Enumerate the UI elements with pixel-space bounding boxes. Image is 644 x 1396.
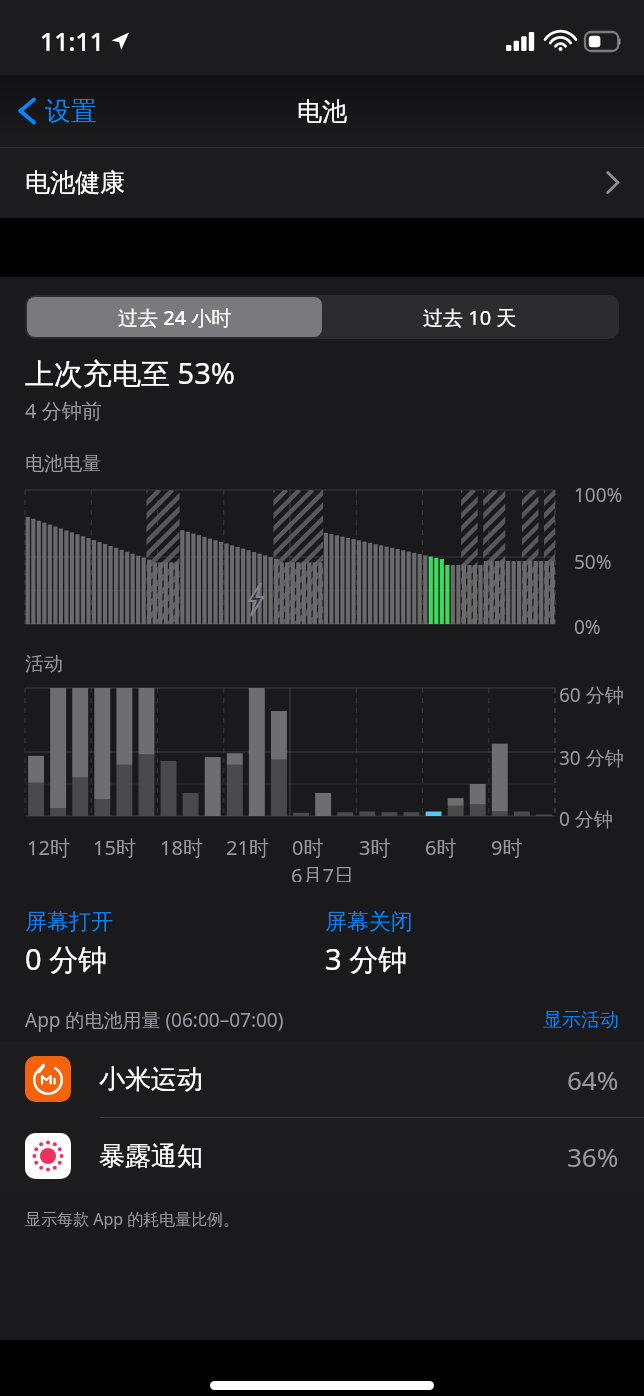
staticText: 设置 bbox=[45, 95, 97, 128]
staticText: 9时 bbox=[491, 834, 523, 861]
staticText: 上次充电至 53% bbox=[25, 353, 235, 393]
staticText: 显示每款 App 的耗电量比例。 bbox=[25, 1208, 240, 1230]
button[interactable]: 小米运动 bbox=[0, 1041, 644, 1117]
staticText: 电池电量 bbox=[25, 452, 101, 476]
staticText: 64% bbox=[567, 1062, 619, 1097]
staticText: 小米运动 bbox=[99, 1063, 203, 1096]
staticText: 18时 bbox=[160, 834, 203, 861]
staticText: 6时 bbox=[425, 834, 457, 861]
button[interactable]: 过去 10 天 bbox=[322, 297, 617, 337]
staticText: 暴露通知 bbox=[99, 1140, 203, 1173]
staticText: 100% bbox=[574, 482, 623, 508]
staticText: 30 分钟 bbox=[559, 745, 624, 771]
button[interactable]: 设置 bbox=[12, 88, 101, 134]
button[interactable]: 电池健康 bbox=[0, 147, 644, 218]
staticText: 显示活动 bbox=[543, 1008, 619, 1032]
staticText: 12时 bbox=[27, 834, 70, 861]
button[interactable]: 过去 24 小时 bbox=[27, 297, 322, 337]
staticText: 60 分钟 bbox=[559, 682, 624, 708]
staticText: 11:11 bbox=[40, 24, 105, 58]
staticText: 4 分钟前 bbox=[25, 397, 102, 424]
button[interactable]: 暴露通知 bbox=[0, 1118, 644, 1194]
staticText: 36% bbox=[567, 1139, 619, 1174]
staticText: 过去 10 天 bbox=[423, 304, 517, 331]
staticText: 活动 bbox=[25, 652, 63, 676]
staticText: 屏幕关闭 bbox=[325, 908, 413, 936]
staticText: App 的电池用量 (06:00–07:00) bbox=[25, 1007, 284, 1033]
staticText: 0% bbox=[574, 614, 601, 640]
staticText: 0时 bbox=[292, 834, 324, 861]
staticText: 6月7日 bbox=[291, 862, 354, 882]
staticText: 3 分钟 bbox=[325, 939, 408, 979]
staticText: 50% bbox=[574, 549, 612, 575]
staticText: 21时 bbox=[226, 834, 269, 861]
staticText: 屏幕打开 bbox=[25, 908, 113, 936]
staticText: 3时 bbox=[359, 834, 391, 861]
staticText: 0 分钟 bbox=[25, 939, 108, 979]
staticText: 0 分钟 bbox=[559, 806, 613, 832]
button[interactable]: 显示活动 bbox=[543, 1008, 619, 1032]
staticText: 过去 24 小时 bbox=[118, 304, 232, 331]
staticText: 电池健康 bbox=[25, 167, 125, 198]
staticText: 电池 bbox=[297, 96, 347, 127]
staticText: 15时 bbox=[93, 834, 136, 861]
